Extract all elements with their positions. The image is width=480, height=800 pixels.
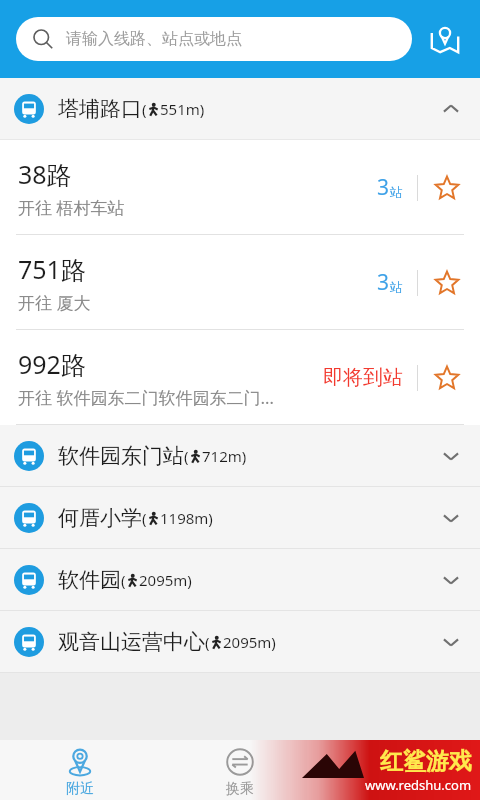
staticText: 请输入线路、站点或地点 [66,29,242,49]
staticText: 附近 [66,780,94,798]
button[interactable]: 观音山运营中心 [0,611,480,672]
button[interactable]: Favorite [432,363,462,393]
button[interactable]: Favorite [432,268,462,298]
button[interactable]: 附近 [0,740,160,800]
staticText: ( [121,570,126,590]
staticText: 1198m) [160,508,213,528]
staticText: ( [142,508,147,528]
button[interactable]: 992路 [0,330,480,425]
staticText: 何厝小学 [58,505,142,531]
button[interactable]: 751路 [0,235,480,330]
button[interactable]: 软件园东门站 [0,425,480,486]
staticText: 观音山运营中心 [58,629,205,655]
staticText: 712m) [202,446,247,466]
staticText: www.redshu.com [365,776,472,794]
staticText: 发现 [386,780,414,798]
staticText: ( [142,99,147,119]
button[interactable]: 换乘 [160,740,320,800]
staticText: 开往 软件园东二门软件园东二门… [18,386,274,409]
staticText: 站 [390,184,403,200]
staticText: 软件园东门站 [58,443,184,469]
staticText: 换乘 [226,780,254,798]
staticText: 站 [390,279,403,295]
button[interactable]: 发现 [320,740,480,800]
staticText: 3 [377,173,390,202]
staticText: 3 [377,268,390,297]
staticText: 2095m) [139,570,192,590]
button[interactable]: 塔埔路口 [0,78,480,139]
button[interactable]: 何厝小学 [0,487,480,548]
staticText: 开往 梧村车站 [18,196,125,219]
staticText: 751路 [18,252,86,286]
staticText: 软件园 [58,567,121,593]
staticText: 开往 厦大 [18,291,91,314]
button[interactable]: 软件园 [0,549,480,610]
staticText: 即将到站 [323,365,403,390]
staticText: ( [184,446,189,466]
button[interactable]: 请输入线路、站点或地点 [16,17,412,61]
staticText: 2095m) [223,632,276,652]
staticText: 红鲨游戏 [380,747,472,776]
button[interactable]: Map [420,14,470,64]
staticText: 551m) [160,99,205,119]
staticText: 塔埔路口 [58,96,142,122]
button[interactable]: Favorite [432,173,462,203]
button[interactable]: 38路 [0,140,480,235]
staticText: 38路 [18,157,72,191]
staticText: ( [205,632,210,652]
staticText: 992路 [18,347,86,381]
